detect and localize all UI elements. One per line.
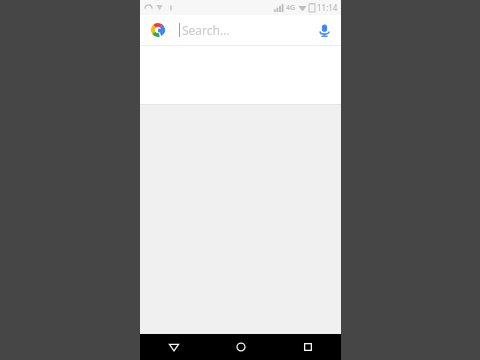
staticText: 4G: [286, 3, 296, 13]
button[interactable]: Recent apps: [274, 334, 341, 360]
button[interactable]: Home: [207, 334, 274, 360]
staticText: 11:14: [317, 2, 338, 13]
button[interactable]: Search...: [140, 15, 341, 45]
button[interactable]: Voice search: [310, 16, 338, 44]
staticText: Search...: [182, 22, 310, 38]
button[interactable]: Back: [140, 334, 207, 360]
